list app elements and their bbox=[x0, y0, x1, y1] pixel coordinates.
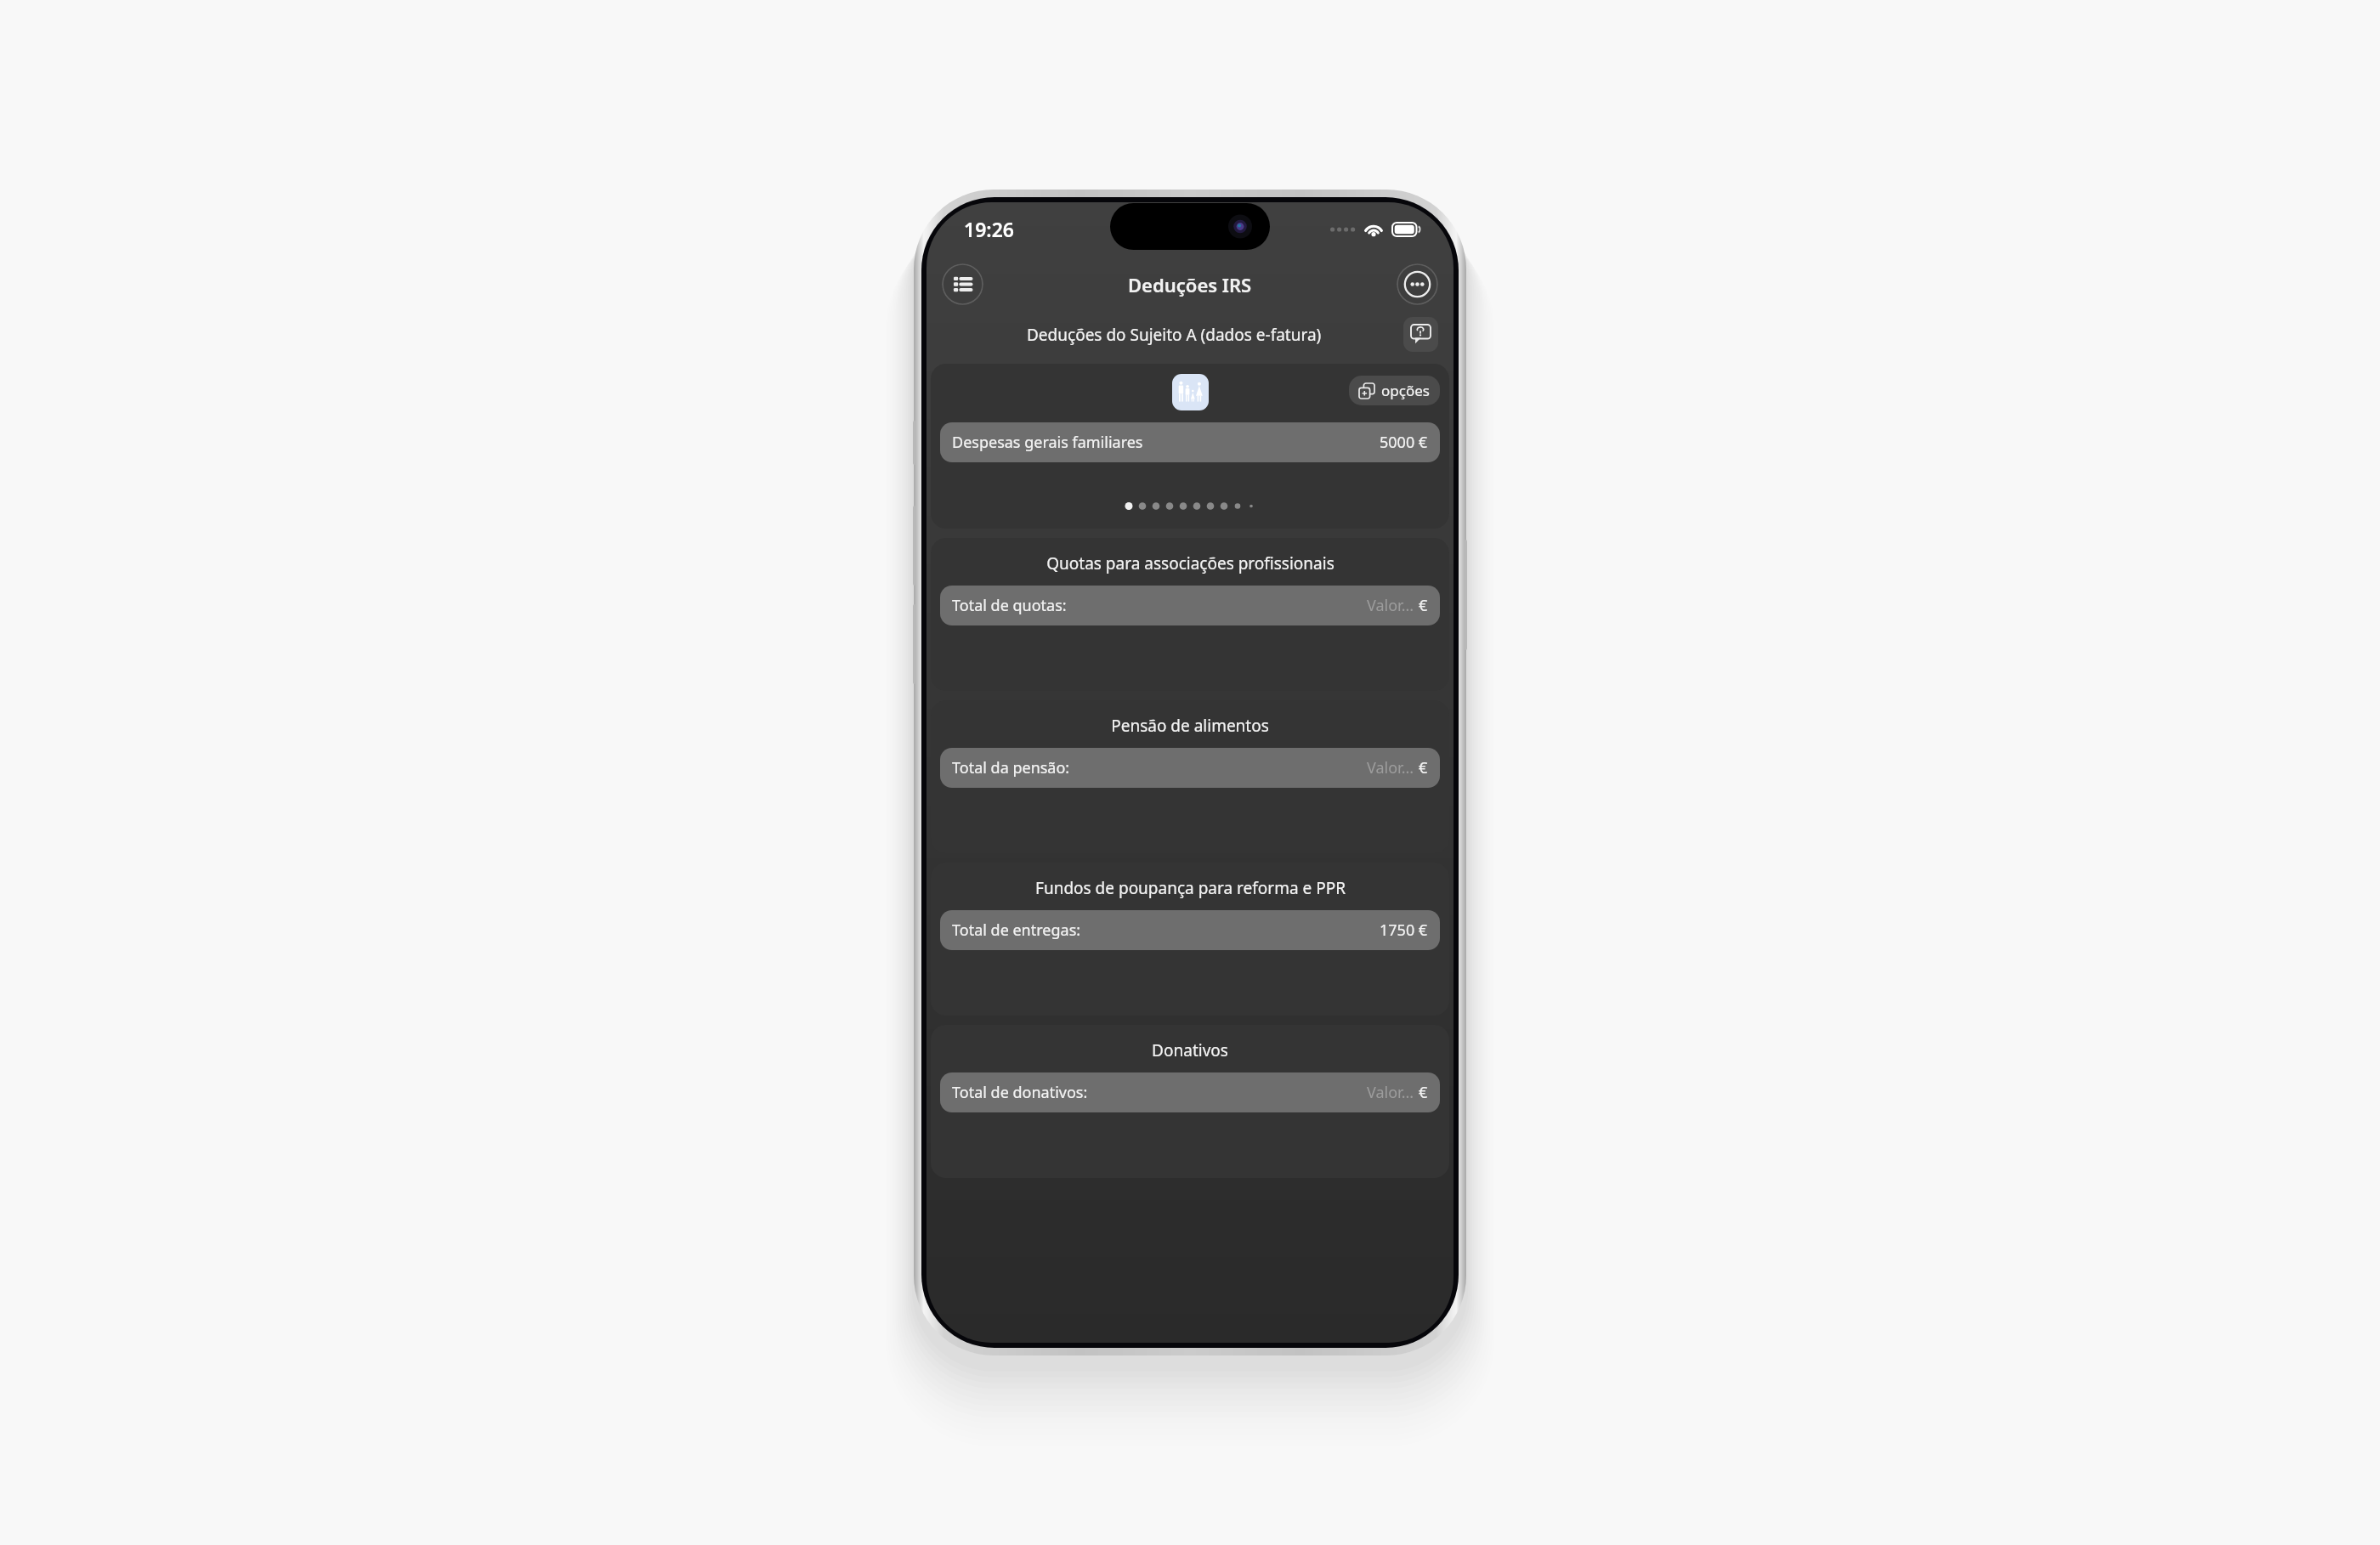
staticText: Total da pensão: bbox=[952, 757, 1070, 778]
button[interactable]: Total de quotas: bbox=[940, 586, 1440, 625]
staticText: € bbox=[1419, 1082, 1428, 1103]
button[interactable]: Mais opções bbox=[1397, 263, 1438, 305]
staticText: 1750 € bbox=[1380, 920, 1428, 941]
staticText: Valor... bbox=[1367, 757, 1414, 778]
button[interactable]: Total de donativos: bbox=[940, 1072, 1440, 1112]
staticText: Donativos bbox=[1152, 1039, 1228, 1061]
staticText: Total de entregas: bbox=[952, 920, 1081, 941]
staticText: Quotas para associações profissionais bbox=[1046, 552, 1334, 574]
button[interactable]: Ajuda bbox=[1403, 317, 1438, 352]
staticText: Deduções do Sujeito A (dados e-fatura) bbox=[1027, 324, 1322, 346]
button[interactable]: Lista bbox=[942, 263, 983, 305]
staticText: 5000 € bbox=[1380, 432, 1428, 453]
button[interactable]: Total da pensão: bbox=[940, 748, 1440, 788]
staticText: opções bbox=[1381, 381, 1430, 400]
button[interactable]: opções bbox=[1349, 376, 1440, 405]
button[interactable]: Despesas gerais familiares bbox=[940, 422, 1440, 462]
staticText: Despesas gerais familiares bbox=[952, 432, 1143, 453]
staticText: Total de quotas: bbox=[952, 595, 1067, 616]
staticText: Valor... bbox=[1367, 595, 1414, 616]
staticText: € bbox=[1419, 757, 1428, 778]
staticText: Fundos de poupança para reforma e PPR bbox=[1035, 877, 1346, 899]
staticText: Total de donativos: bbox=[952, 1082, 1088, 1103]
staticText: Pensão de alimentos bbox=[1111, 715, 1269, 737]
staticText: Deduções IRS bbox=[1128, 272, 1252, 297]
staticText: 19:26 bbox=[964, 216, 1014, 242]
button[interactable]: Família bbox=[1172, 374, 1209, 410]
button[interactable]: Total de entregas: bbox=[940, 910, 1440, 950]
staticText: € bbox=[1419, 595, 1428, 616]
staticText: Valor... bbox=[1367, 1082, 1414, 1103]
